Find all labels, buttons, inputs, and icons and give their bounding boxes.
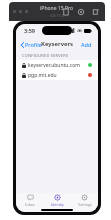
staticText: CONFIGURED SERVERS [22,53,69,58]
staticText: pgp.mit.edu [28,72,57,79]
staticText: Keyservers [41,40,73,48]
button[interactable]: pgp.mit.edu [16,70,98,80]
staticText: Settings [78,202,92,207]
button[interactable]: keyserver.ubuntu.com [16,60,98,70]
staticText: Add [81,41,92,48]
button[interactable]: Settings [71,193,98,207]
staticText: iOS 17.2 [50,13,64,18]
button[interactable]: Identity [44,193,71,207]
staticText: Inbox [25,202,35,207]
staticText: Profile [25,41,42,48]
button[interactable]: Record [92,8,100,16]
button[interactable]: Rotate [62,8,70,16]
button[interactable]: Inbox [16,193,44,207]
button[interactable] [25,10,28,13]
button[interactable] [13,10,16,13]
staticText: Identity [51,202,64,207]
button[interactable]: Screenshot [77,8,85,16]
staticText: 3:59 [24,27,35,34]
staticText: keyserver.ubuntu.com [28,62,80,69]
button[interactable]: Profile [19,40,44,49]
button[interactable] [19,10,22,13]
button[interactable]: Add [79,40,94,49]
staticText: iPhone 15 Pro [40,5,74,12]
